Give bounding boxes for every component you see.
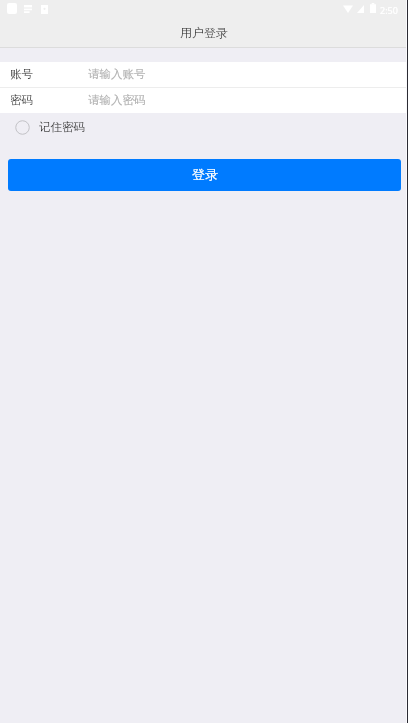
other: Mobile signal (357, 5, 364, 13)
staticText: 请输入账号 (88, 67, 146, 81)
staticText: 登录 (192, 166, 218, 182)
staticText: 账号 (10, 67, 33, 81)
button[interactable]: 密码 (0, 88, 408, 113)
other: Wi-Fi (343, 4, 353, 13)
staticText: 请输入密码 (88, 93, 146, 107)
button[interactable]: 账号 (0, 62, 408, 87)
staticText: 2:50 (380, 4, 398, 16)
other: Battery (370, 3, 376, 13)
staticText: 记住密码 (39, 120, 85, 134)
button[interactable]: 登录 (8, 159, 401, 191)
staticText: 密码 (10, 93, 33, 107)
staticText: 用户登录 (180, 25, 228, 40)
other: Message (24, 5, 32, 13)
other: App notification (41, 5, 48, 14)
button[interactable]: 记住密码 (0, 113, 408, 141)
